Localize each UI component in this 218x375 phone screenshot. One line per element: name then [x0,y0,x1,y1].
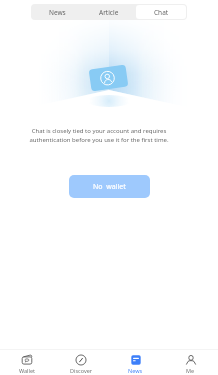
staticText: News [128,367,143,374]
button[interactable]: Article [84,5,134,19]
staticText: Chat [154,8,169,17]
button[interactable]: No wallet [69,175,150,198]
staticText: Article [99,8,119,17]
button[interactable]: Wallet [0,350,54,375]
button[interactable]: News [108,350,163,375]
staticText: Chat is closely tied to your account and… [2,127,196,144]
button[interactable]: News [32,5,82,19]
button[interactable]: Discover [54,350,108,375]
button[interactable]: Chat [136,5,186,19]
button[interactable]: Me [163,350,218,375]
staticText: Me [186,367,195,374]
staticText: Wallet [19,367,36,374]
staticText: Discover [70,367,93,374]
staticText: News [49,8,66,17]
staticText: No wallet [93,182,126,192]
